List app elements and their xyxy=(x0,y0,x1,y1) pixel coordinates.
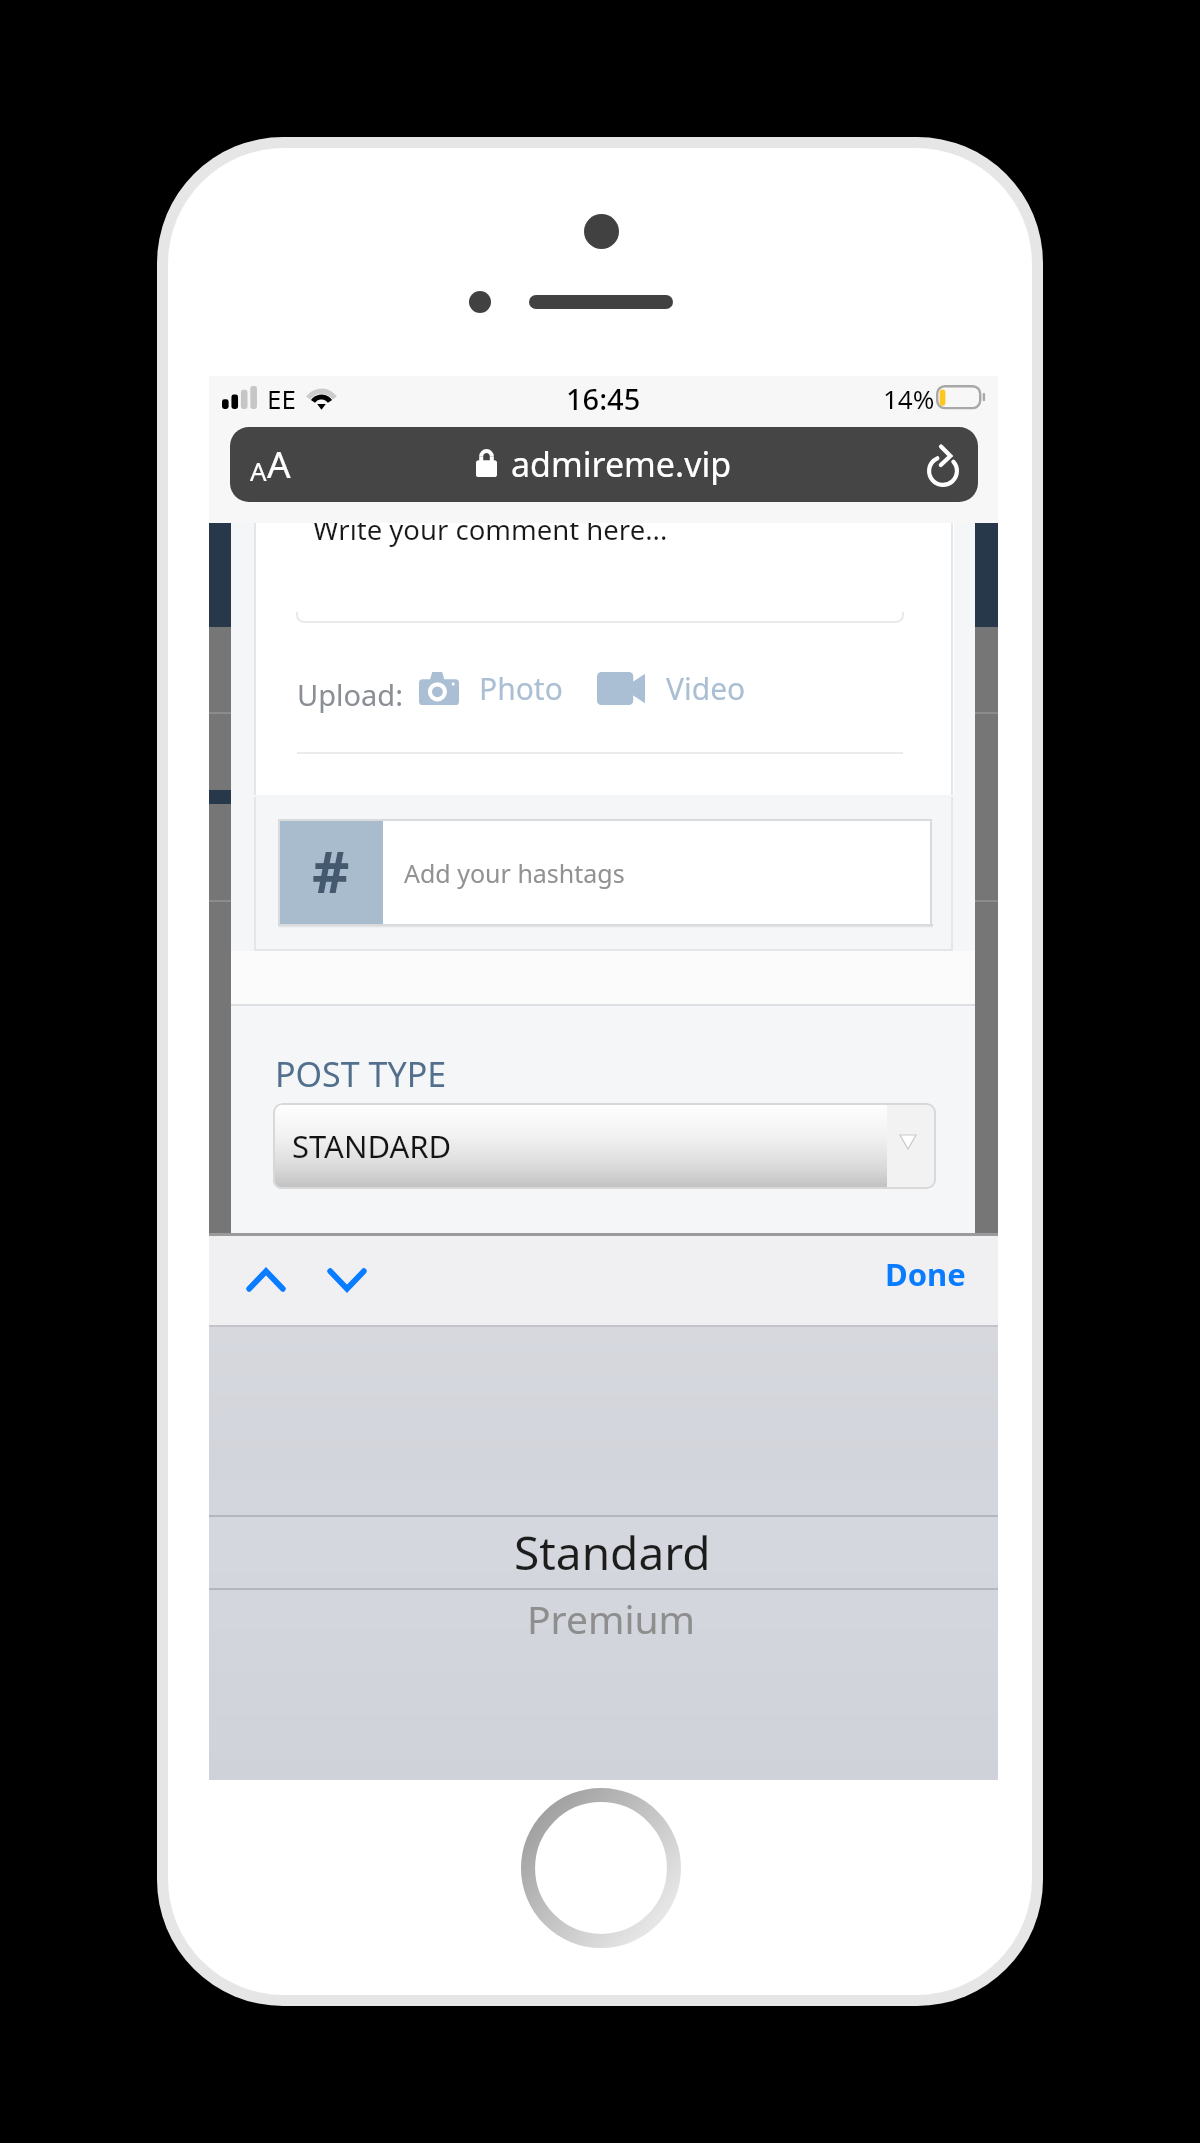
button[interactable]: Previous field xyxy=(227,1249,305,1311)
staticText: Done xyxy=(885,1253,966,1295)
staticText: Write your comment here... xyxy=(313,523,668,548)
staticText: POST TYPE xyxy=(275,1051,447,1097)
button[interactable]: Video xyxy=(597,664,746,712)
button[interactable]: Standard xyxy=(514,1521,711,1584)
button[interactable]: Reload page xyxy=(920,440,962,488)
staticText: Video xyxy=(666,668,746,709)
staticText: # xyxy=(312,831,350,910)
button[interactable]: Done xyxy=(875,1245,976,1303)
staticText: EE xyxy=(267,381,296,416)
staticText: 14% xyxy=(883,381,935,416)
staticText: STANDARD xyxy=(292,1125,452,1167)
staticText: A xyxy=(267,438,291,488)
staticText: A xyxy=(250,453,267,488)
button[interactable]: # xyxy=(278,819,932,926)
button[interactable]: STANDARD xyxy=(273,1103,936,1189)
button[interactable]: Next field xyxy=(308,1249,386,1311)
button[interactable]: Premium xyxy=(527,1592,696,1645)
button[interactable]: Text size xyxy=(240,427,301,500)
button[interactable]: Text size xyxy=(230,427,978,502)
button[interactable]: Photo xyxy=(419,664,563,712)
staticText: Upload: xyxy=(297,675,403,714)
staticText: admireme.vip xyxy=(511,441,732,487)
staticText: Photo xyxy=(479,668,563,709)
staticText: Add your hashtags xyxy=(404,856,625,890)
staticText: 16:45 xyxy=(566,379,641,418)
